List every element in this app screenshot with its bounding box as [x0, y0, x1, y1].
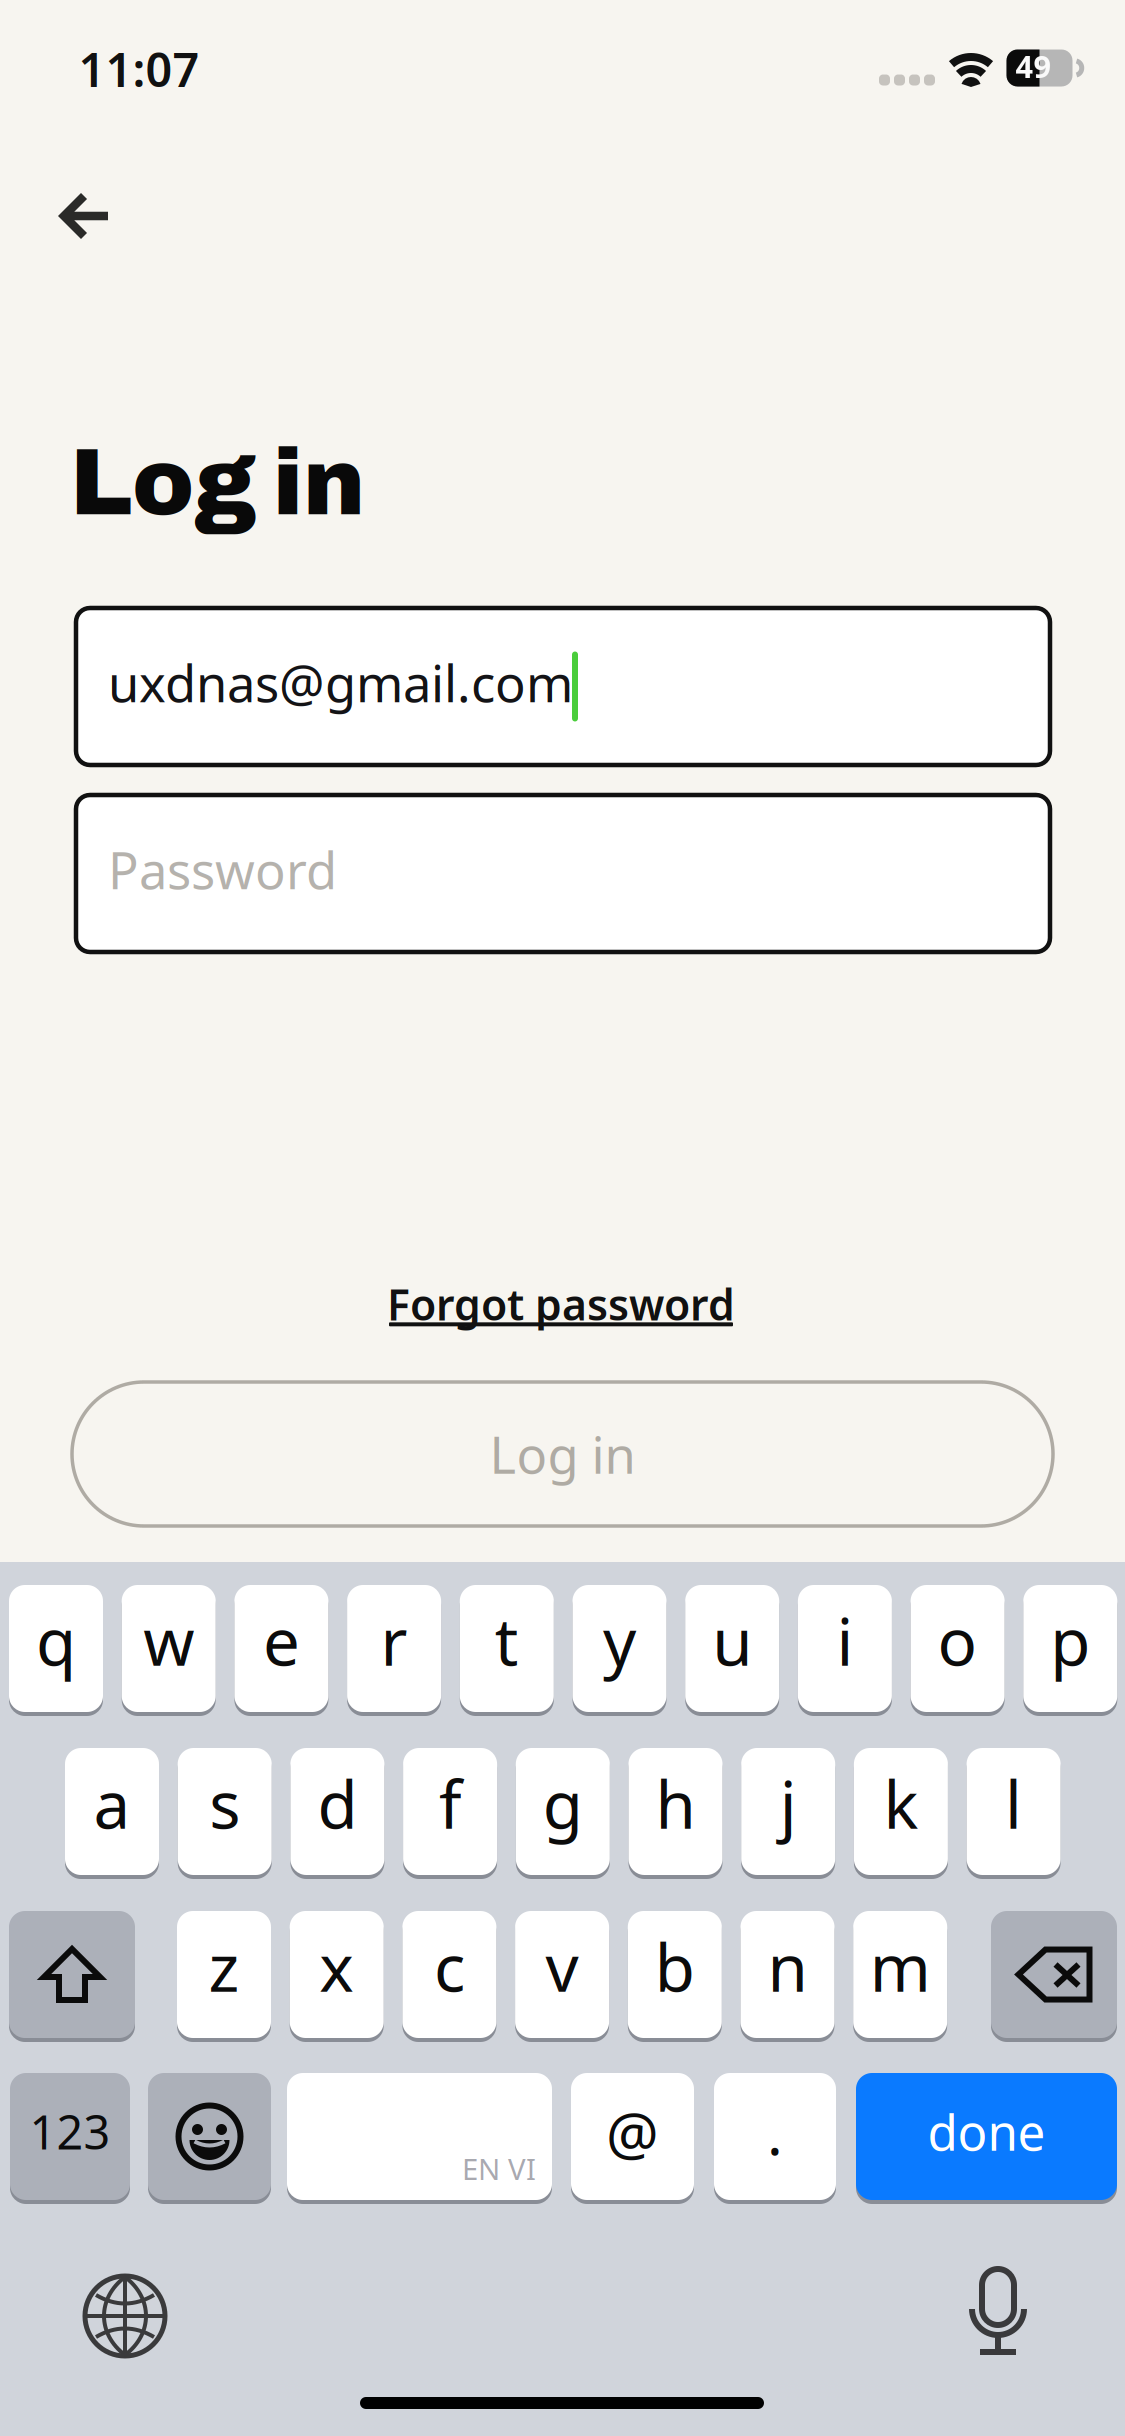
- staticText: EN VI: [462, 2149, 536, 2188]
- button[interactable]: f: [403, 1744, 497, 1879]
- staticText: r: [381, 1597, 408, 1684]
- staticText: o: [938, 1597, 978, 1684]
- staticText: 123: [29, 2100, 110, 2162]
- button[interactable]: Dictate: [967, 2265, 1029, 2357]
- staticText: 49: [1015, 46, 1051, 86]
- staticText: v: [546, 1923, 579, 2010]
- button[interactable]: k: [854, 1744, 948, 1879]
- staticText: Forgot password: [387, 1276, 735, 1332]
- button[interactable]: Back: [31, 162, 141, 272]
- button[interactable]: n: [740, 1907, 834, 2042]
- button[interactable]: Space: [287, 2069, 552, 2204]
- button[interactable]: z: [177, 1907, 271, 2042]
- button[interactable]: b: [628, 1907, 722, 2042]
- button[interactable]: d: [290, 1744, 384, 1879]
- button[interactable]: o: [911, 1581, 1005, 1716]
- button[interactable]: c: [402, 1907, 496, 2042]
- button[interactable]: Next keyboard: [85, 2276, 165, 2356]
- button[interactable]: Shift: [9, 1907, 135, 2042]
- button[interactable]: @: [571, 2069, 694, 2204]
- staticText: j: [780, 1760, 797, 1847]
- button[interactable]: t: [460, 1581, 554, 1716]
- staticText: p: [1050, 1597, 1090, 1684]
- staticText: s: [209, 1760, 240, 1847]
- staticText: y: [603, 1597, 636, 1684]
- staticText: Password: [108, 836, 337, 903]
- button[interactable]: y: [572, 1581, 666, 1716]
- button[interactable]: e: [234, 1581, 328, 1716]
- staticText: h: [655, 1760, 695, 1847]
- button[interactable]: u: [685, 1581, 779, 1716]
- staticText: Log in: [489, 1420, 635, 1488]
- staticText: l: [1005, 1760, 1022, 1847]
- staticText: c: [434, 1923, 465, 2010]
- staticText: f: [439, 1760, 461, 1847]
- button[interactable]: p: [1023, 1581, 1117, 1716]
- button[interactable]: Delete: [991, 1907, 1117, 2042]
- button[interactable]: v: [515, 1907, 609, 2042]
- staticText: e: [263, 1597, 300, 1684]
- button[interactable]: Log in: [72, 1382, 1053, 1526]
- staticText: @: [606, 2093, 659, 2171]
- button[interactable]: a: [65, 1744, 159, 1879]
- staticText: k: [883, 1760, 918, 1847]
- button[interactable]: Forgot password: [387, 1276, 735, 1336]
- staticText: q: [36, 1597, 76, 1684]
- button[interactable]: w: [122, 1581, 216, 1716]
- button[interactable]: Emoji: [148, 2069, 271, 2204]
- button[interactable]: r: [347, 1581, 441, 1716]
- button[interactable]: g: [516, 1744, 610, 1879]
- staticText: n: [767, 1923, 807, 2010]
- staticText: g: [543, 1760, 583, 1847]
- button[interactable]: x: [290, 1907, 384, 2042]
- staticText: t: [495, 1597, 519, 1684]
- button[interactable]: done: [856, 2069, 1117, 2204]
- staticText: uxdnas@gmail.com: [108, 649, 573, 716]
- staticText: done: [927, 2099, 1045, 2164]
- staticText: b: [655, 1923, 695, 2010]
- staticText: d: [317, 1760, 357, 1847]
- button[interactable]: .: [714, 2069, 836, 2204]
- button[interactable]: Password: [76, 795, 1050, 952]
- staticText: u: [712, 1597, 752, 1684]
- button[interactable]: l: [967, 1744, 1061, 1879]
- staticText: w: [143, 1597, 194, 1684]
- button[interactable]: s: [178, 1744, 272, 1879]
- button[interactable]: i: [798, 1581, 892, 1716]
- staticText: a: [93, 1760, 130, 1847]
- button[interactable]: j: [741, 1744, 835, 1879]
- button[interactable]: q: [9, 1581, 103, 1716]
- staticText: z: [208, 1923, 239, 2010]
- button[interactable]: h: [628, 1744, 722, 1879]
- button[interactable]: uxdnas@gmail.com: [76, 608, 1050, 765]
- staticText: .: [767, 2093, 783, 2171]
- button[interactable]: m: [853, 1907, 947, 2042]
- staticText: i: [836, 1597, 853, 1684]
- staticText: Log in: [70, 432, 365, 534]
- staticText: 11:07: [78, 38, 199, 100]
- button[interactable]: 123: [10, 2069, 130, 2204]
- staticText: m: [870, 1923, 931, 2010]
- staticText: x: [319, 1923, 354, 2010]
